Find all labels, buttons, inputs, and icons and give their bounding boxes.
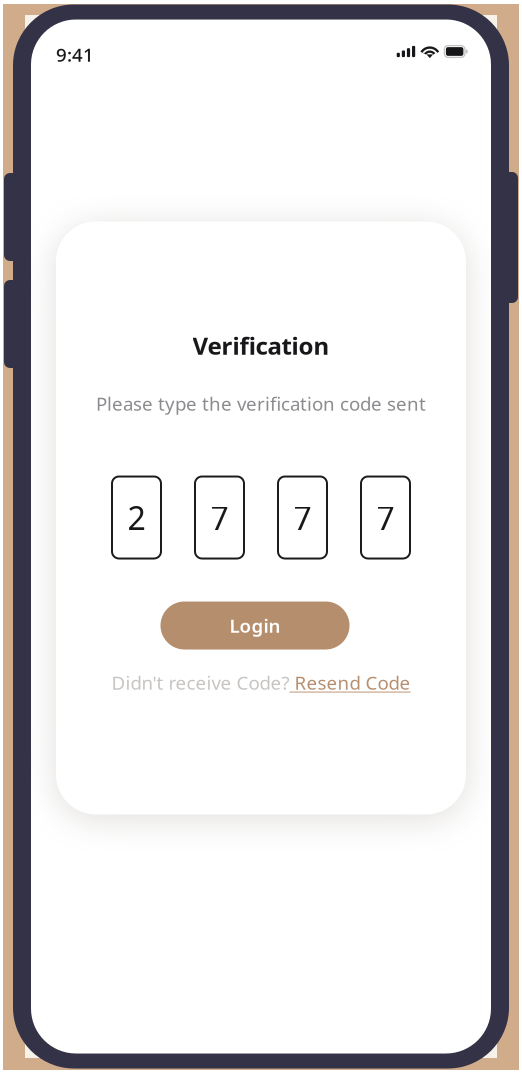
staticText: 2 xyxy=(127,496,145,539)
staticText: Login xyxy=(229,613,280,638)
button[interactable]: Code digit 7 xyxy=(195,476,244,558)
staticText: Resend Code xyxy=(289,670,410,695)
button[interactable]: Login xyxy=(160,601,349,649)
button[interactable]: Code digit 2 xyxy=(112,476,161,558)
staticText: 7 xyxy=(210,496,228,539)
button[interactable]: Code digit 7 xyxy=(361,476,410,558)
staticText: 9:41 xyxy=(56,42,94,67)
staticText: Didn't receive Code? xyxy=(111,670,289,695)
staticText: 7 xyxy=(376,496,394,539)
button[interactable]: Code digit 7 xyxy=(278,476,327,558)
button[interactable]: Didn't receive Code? xyxy=(111,672,410,692)
staticText: Verification xyxy=(192,330,329,361)
staticText: Please type the verification code sent xyxy=(96,391,426,416)
staticText: 7 xyxy=(293,496,311,539)
